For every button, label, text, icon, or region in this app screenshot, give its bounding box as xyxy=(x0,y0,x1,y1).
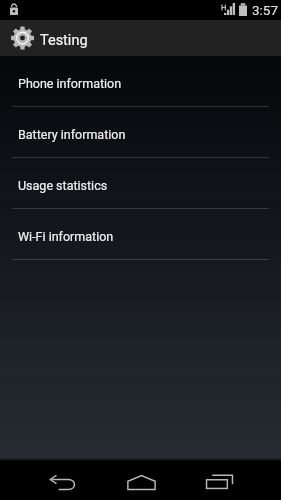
staticText: Phone information xyxy=(18,76,122,91)
staticText: H xyxy=(221,3,227,12)
staticText: Battery information xyxy=(18,127,126,142)
button[interactable]: Phone information xyxy=(0,56,281,107)
button[interactable]: Usage statistics xyxy=(0,158,281,209)
button[interactable]: Back xyxy=(38,461,88,500)
staticText: 3:57 xyxy=(252,2,279,18)
staticText: Usage statistics xyxy=(18,178,108,193)
button[interactable]: Recent apps xyxy=(194,461,244,500)
staticText: Testing xyxy=(40,32,88,49)
button[interactable]: Battery information xyxy=(0,107,281,158)
staticText: Wi-Fi information xyxy=(18,229,114,244)
button[interactable]: Home xyxy=(116,461,166,500)
button[interactable]: Wi-Fi information xyxy=(0,209,281,260)
